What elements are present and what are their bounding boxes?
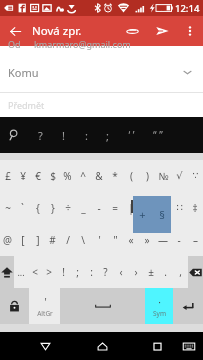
button[interactable]: - [91,192,107,224]
button[interactable]: ` [15,192,30,224]
button[interactable]: ¥ [15,160,30,192]
button[interactable]: “ ” [145,117,171,153]
button[interactable]: € [30,160,45,192]
button[interactable]: # [45,224,60,256]
button[interactable]: » [139,224,155,256]
button[interactable]: % [60,160,75,192]
staticText: ‘ ’ [128,128,135,142]
button[interactable]: ; [70,256,84,288]
button[interactable]: \ [75,224,91,256]
button[interactable]: : [84,256,98,288]
button[interactable]: — [155,224,171,256]
staticText: < [32,265,38,279]
staticText: › [134,265,138,279]
button[interactable]: | [123,192,139,224]
button[interactable]: , [173,256,188,288]
button[interactable]: – [187,224,203,256]
button[interactable]: & [91,160,107,192]
button[interactable]: Shift [0,256,14,288]
staticText: ] [36,233,40,247]
staticText: € [35,169,41,183]
button[interactable]: Enter [173,288,203,324]
button[interactable]: § [155,192,171,224]
staticText: { [36,201,40,215]
button[interactable]: ... [14,256,28,288]
button[interactable]: ! [52,117,74,153]
button[interactable]: = [107,192,123,224]
staticText: ` [21,201,24,215]
button[interactable]: - [171,224,187,256]
button[interactable]: @ [0,224,15,256]
button[interactable]: } [45,192,60,224]
staticText: ' [44,295,47,309]
button[interactable]: Switch keyboard [178,332,200,360]
staticText: - [97,201,101,215]
button[interactable]: Předmět [0,93,203,117]
staticText: kmarmaro@gmail.com [34,38,131,50]
button[interactable]: ∷ [171,192,187,224]
button[interactable]: ? [98,256,113,288]
button[interactable]: More options [177,18,203,44]
button[interactable]: Space [60,288,145,324]
button[interactable]: ‡ [187,192,203,224]
button[interactable]: ∵ [187,160,203,192]
button[interactable]: ~ [0,192,15,224]
button[interactable]: ‘ ’ [118,117,144,153]
button[interactable]: Send [147,16,177,46]
button[interactable]: [ [15,224,30,256]
button[interactable]: · [145,288,173,324]
button[interactable]: £ [0,160,15,192]
button[interactable]: Search [3,117,25,153]
button[interactable]: Attach file [117,16,147,46]
staticText: ... [17,266,25,278]
button[interactable]: { [30,192,45,224]
button[interactable]: ‹ [113,256,128,288]
button[interactable]: ' [91,224,107,256]
button[interactable]: « [123,224,139,256]
button[interactable]: Back [0,16,30,46]
button[interactable]: * [107,160,123,192]
staticText: = [112,201,118,215]
button[interactable]: Back [34,332,56,360]
button[interactable]: + [139,192,155,224]
button[interactable]: Expand recipients [176,61,198,83]
staticText: « [128,233,134,247]
button[interactable]: " [107,224,123,256]
staticText: Nová zpr. [32,23,82,39]
button[interactable]: ; [96,117,118,153]
staticText: № [158,169,169,183]
staticText: @ [3,233,12,247]
button[interactable]: ? [29,117,51,153]
button[interactable]: › [128,256,143,288]
button[interactable]: № [155,160,171,192]
staticText: # [49,233,56,247]
button[interactable]: ÷ [60,192,75,224]
button[interactable]: ( [123,160,139,192]
button[interactable]: . [158,256,173,288]
button[interactable]: √ [171,160,187,192]
button[interactable]: ] [30,224,45,256]
button[interactable]: Caps lock [0,288,29,324]
button[interactable]: Backspace [188,256,203,288]
button[interactable]: Home [91,332,113,360]
staticText: · [158,295,161,309]
button[interactable]: : [75,117,97,153]
button[interactable]: Komu [0,52,203,92]
button[interactable]: Recent apps [146,332,168,360]
staticText: . [164,265,167,279]
button[interactable]: ! [56,256,70,288]
button[interactable]: ) [139,160,155,192]
button[interactable]: _ [75,192,91,224]
staticText: ) [146,169,149,183]
button[interactable]: ^ [75,160,91,192]
button[interactable]: / [60,224,75,256]
staticText: ? [38,128,43,143]
button[interactable]: ± [143,256,158,288]
button[interactable]: > [42,256,56,288]
staticText: \ [81,233,85,247]
staticText: ± [148,265,154,279]
staticText: } [51,201,55,215]
button[interactable]: $ [45,160,60,192]
button[interactable]: < [28,256,42,288]
button[interactable]: ' [29,288,60,324]
